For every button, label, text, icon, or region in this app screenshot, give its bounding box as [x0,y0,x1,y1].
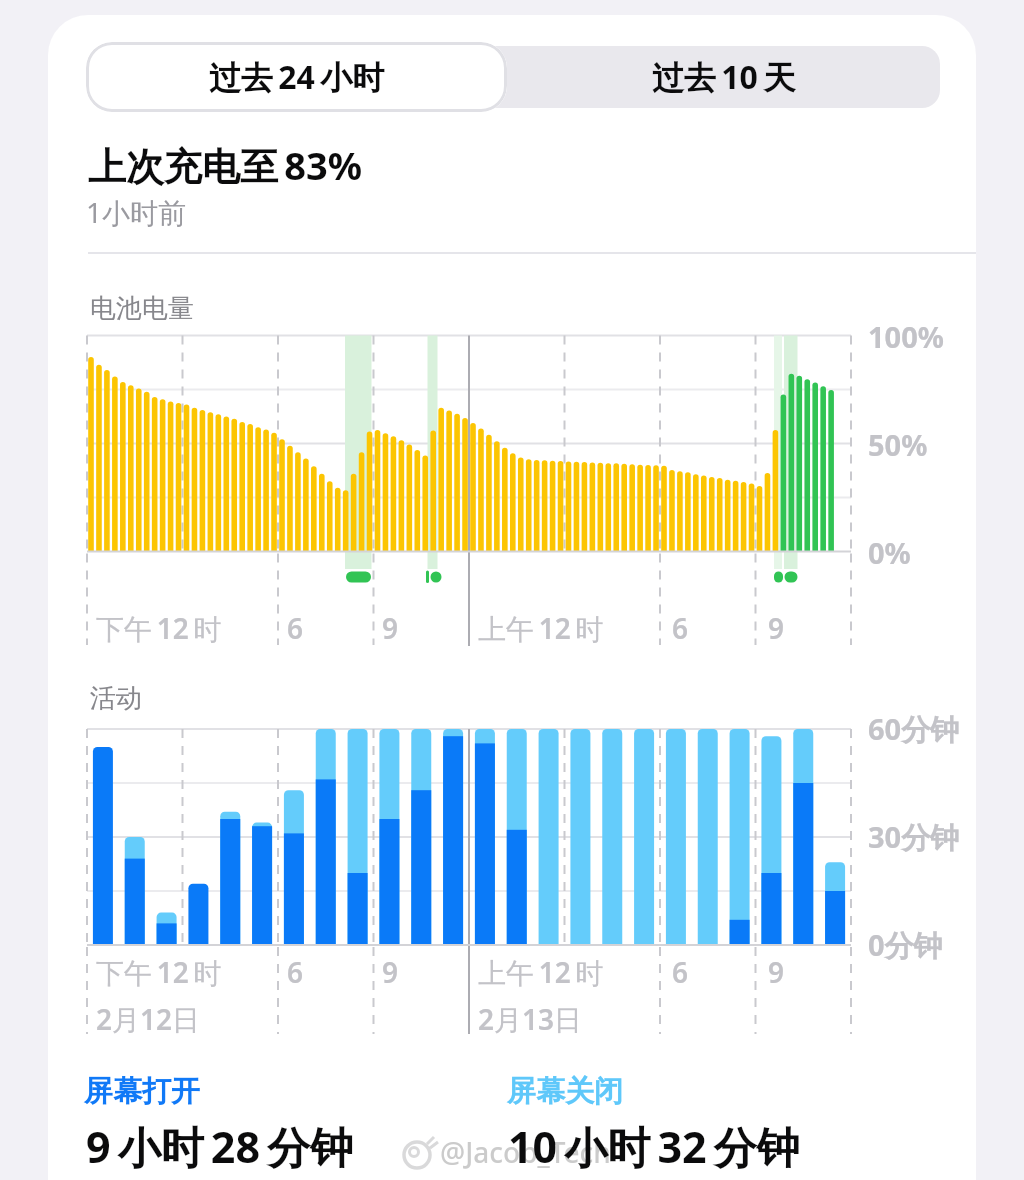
staticText: 50% [868,425,928,464]
staticText: 9 [382,609,399,647]
staticText: 9 [768,953,785,991]
staticText: 1小时前 [86,193,187,231]
staticText: 9 [382,953,399,991]
staticText: 9 小时 28 分钟 [86,1117,354,1176]
staticText: 30分钟 [868,817,960,857]
button[interactable] [86,42,507,112]
staticText: 屏幕关闭 [507,1073,623,1110]
staticText: 电池电量 [90,292,194,325]
staticText: 上午 12 时 [478,609,604,647]
staticText: 6 [672,609,689,647]
staticText: 100% [868,317,944,356]
staticText: 9 [768,609,785,647]
button[interactable] [88,46,940,108]
staticText: 活动 [90,682,142,715]
staticText: 10 小时 32 分钟 [508,1117,800,1176]
staticText: @Jacob_Tech [440,1133,611,1171]
staticText: 上午 12 时 [478,953,604,991]
button[interactable]: 过去 10 天 [507,46,940,108]
staticText: 0% [868,533,911,572]
staticText: 6 [287,953,304,991]
staticText: 2月12日 [96,1000,201,1038]
staticText: 下午 12 时 [96,953,222,991]
staticText: 6 [287,609,304,647]
staticText: 过去 24 小时 [209,55,385,99]
staticText: 0分钟 [868,925,943,965]
staticText: 过去 10 天 [652,55,796,99]
staticText: 屏幕打开 [84,1073,200,1110]
staticText: 下午 12 时 [96,609,222,647]
staticText: 60分钟 [868,709,960,749]
staticText: 6 [672,953,689,991]
staticText: 2月13日 [478,1000,583,1038]
staticText: 上次充电至 83% [88,139,363,191]
